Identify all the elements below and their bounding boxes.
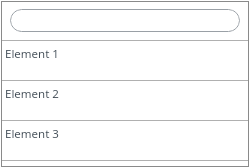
staticText: Element 2 — [5, 86, 59, 102]
button[interactable]: Element 2 — [1, 81, 249, 120]
button[interactable]: Element 3 — [1, 121, 249, 160]
staticText: Element 3 — [5, 126, 59, 142]
button[interactable]: Search — [10, 9, 240, 32]
button[interactable]: Element 1 — [1, 41, 249, 80]
staticText: Element 1 — [5, 46, 59, 62]
